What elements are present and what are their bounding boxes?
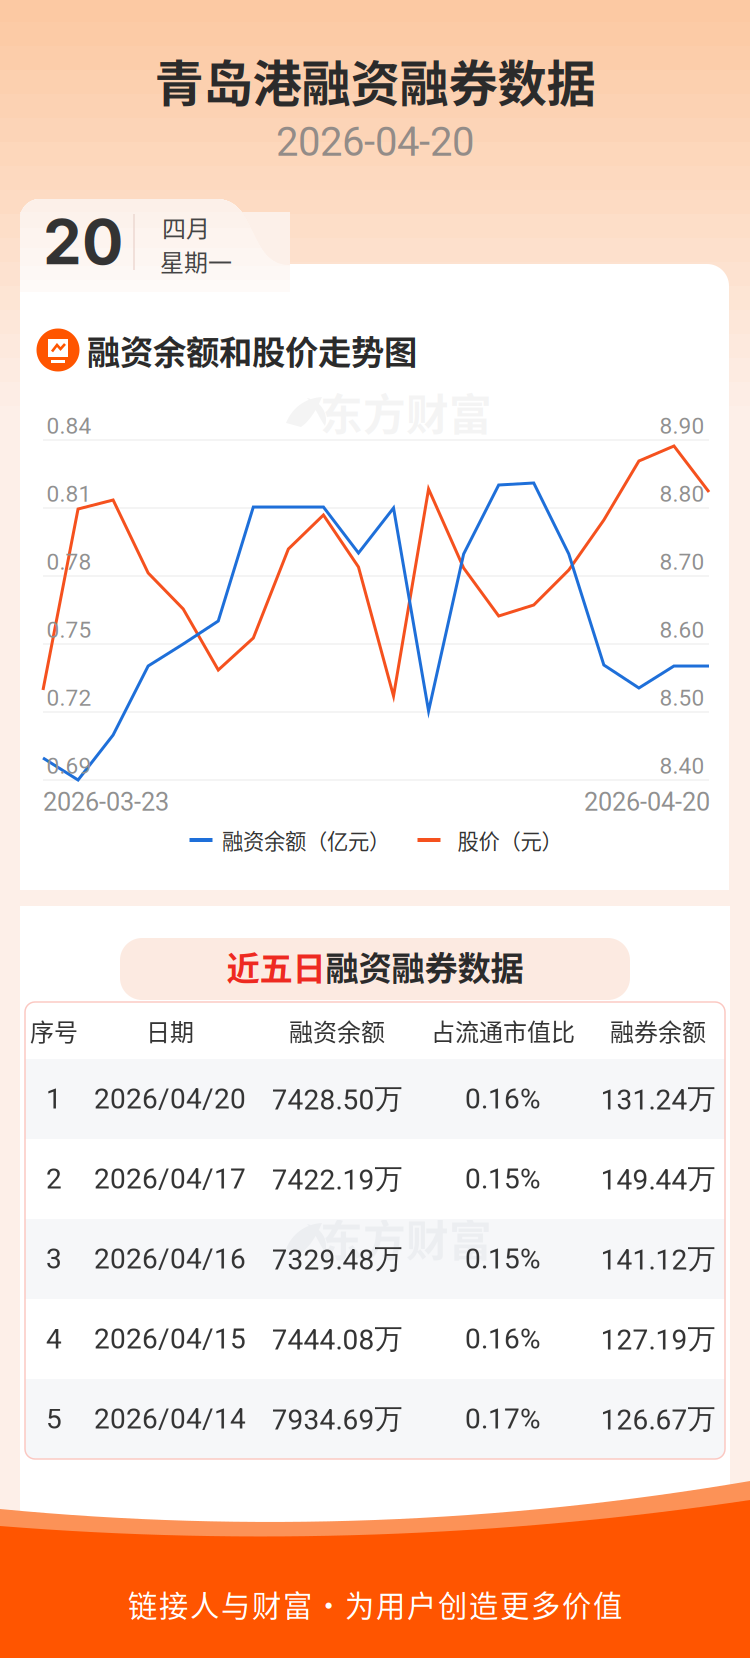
staticText: 0.16% bbox=[465, 1083, 541, 1115]
staticText: 2026/04/15 bbox=[94, 1323, 246, 1355]
staticText: 8.50 bbox=[659, 685, 704, 711]
staticText: 融券余额 bbox=[610, 1013, 706, 1048]
staticText: 2026/04/16 bbox=[94, 1243, 246, 1275]
staticText: 0.15% bbox=[465, 1243, 541, 1275]
staticText: 东方财富 bbox=[320, 1207, 492, 1269]
staticText: 占流通市值比 bbox=[431, 1013, 575, 1048]
staticText: 0.78 bbox=[46, 549, 91, 575]
staticText: 4 bbox=[46, 1323, 62, 1355]
staticText: 0.75 bbox=[46, 617, 91, 643]
staticText: 1 bbox=[46, 1083, 62, 1115]
staticText: 融资余额和股价走势图 bbox=[87, 326, 417, 374]
staticText: 8.80 bbox=[659, 481, 704, 507]
staticText: 0.84 bbox=[46, 413, 91, 439]
staticText: 7422.19万 bbox=[271, 1161, 402, 1197]
staticText: 0.81 bbox=[46, 481, 91, 507]
staticText: 0.17% bbox=[465, 1403, 541, 1435]
staticText: 2026/04/20 bbox=[94, 1083, 246, 1115]
staticText: 8.40 bbox=[659, 753, 704, 779]
staticText: 股价（元） bbox=[457, 825, 562, 855]
staticText: 131.24万 bbox=[600, 1081, 715, 1117]
staticText: 2026/04/17 bbox=[94, 1163, 246, 1195]
staticText: 0.72 bbox=[46, 685, 91, 711]
staticText: 青岛港融资融券数据 bbox=[154, 44, 595, 116]
staticText: 近五日 bbox=[226, 942, 325, 990]
staticText: 8.70 bbox=[659, 549, 704, 575]
staticText: 融资融券数据 bbox=[325, 942, 523, 990]
staticText: 2026/04/14 bbox=[94, 1403, 246, 1435]
staticText: 7934.69万 bbox=[271, 1401, 402, 1437]
staticText: 2026-03-23 bbox=[43, 787, 169, 817]
staticText: 7428.50万 bbox=[271, 1081, 402, 1117]
staticText: 8.90 bbox=[659, 413, 704, 439]
staticText: 序号 bbox=[30, 1013, 78, 1048]
staticText: 3 bbox=[46, 1243, 62, 1275]
staticText: 141.12万 bbox=[600, 1241, 715, 1277]
staticText: 0.69 bbox=[46, 753, 91, 779]
staticText: 2026-04-20 bbox=[276, 119, 474, 165]
staticText: 四月 bbox=[162, 210, 210, 244]
staticText: 8.60 bbox=[659, 617, 704, 643]
staticText: 融资余额（亿元） bbox=[222, 825, 390, 855]
staticText: 融资余额 bbox=[289, 1013, 385, 1048]
staticText: 7444.08万 bbox=[271, 1321, 402, 1357]
staticText: 链接人与财富·为用户创造更多价值 bbox=[128, 1583, 622, 1625]
staticText: 127.19万 bbox=[600, 1321, 715, 1357]
staticText: 20 bbox=[43, 205, 123, 279]
staticText: 5 bbox=[46, 1403, 62, 1435]
staticText: 126.67万 bbox=[600, 1401, 715, 1437]
staticText: 2026-04-20 bbox=[584, 787, 710, 817]
staticText: 7329.48万 bbox=[271, 1241, 402, 1277]
staticText: 2 bbox=[46, 1163, 62, 1195]
staticText: 0.16% bbox=[465, 1323, 541, 1355]
staticText: 东方财富 bbox=[320, 381, 492, 443]
staticText: 日期 bbox=[146, 1013, 194, 1048]
staticText: 149.44万 bbox=[600, 1161, 715, 1197]
staticText: 0.15% bbox=[465, 1163, 541, 1195]
staticText: 星期一 bbox=[160, 244, 232, 278]
